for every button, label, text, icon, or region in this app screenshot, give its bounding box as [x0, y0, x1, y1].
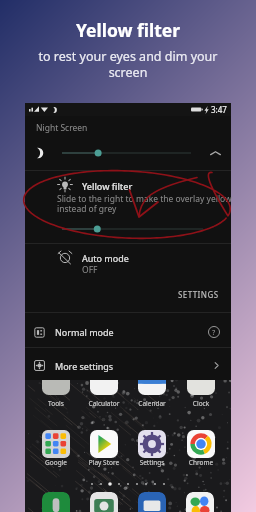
staticText: ? — [212, 327, 216, 337]
staticText: Slide to the right to make the overlay y… — [57, 193, 239, 214]
staticText: Play Store — [81, 458, 127, 467]
button[interactable]: Help — [203, 321, 225, 343]
button[interactable] — [178, 430, 224, 472]
staticText: Clock — [178, 399, 224, 408]
button[interactable]: App — [90, 492, 118, 512]
button[interactable]: SETTINGS — [173, 286, 224, 303]
button[interactable] — [129, 380, 175, 409]
staticText: Settings — [129, 458, 175, 467]
staticText: 3:47 — [211, 104, 227, 115]
staticText: SETTINGS — [178, 289, 219, 300]
button[interactable] — [33, 430, 79, 472]
button[interactable]: More settings — [25, 352, 231, 379]
button[interactable]: App — [186, 492, 214, 512]
button[interactable]: App — [42, 492, 70, 512]
button[interactable] — [62, 222, 203, 236]
button[interactable]: App — [138, 492, 166, 512]
button[interactable] — [81, 380, 127, 409]
button[interactable]: Collapse — [206, 144, 224, 162]
staticText: Yellow filter — [0, 18, 256, 42]
staticText: Calendar — [129, 399, 175, 408]
staticText: Night Screen — [36, 122, 88, 134]
button[interactable] — [33, 380, 79, 409]
staticText: Google — [33, 458, 79, 467]
button[interactable] — [178, 380, 224, 409]
button[interactable] — [129, 430, 175, 472]
staticText: Chrome — [178, 458, 224, 467]
button[interactable] — [62, 146, 191, 160]
staticText: Tools — [33, 399, 79, 408]
staticText: Yellow filter — [82, 180, 133, 192]
button[interactable] — [81, 430, 127, 472]
staticText: to rest your eyes and dim your screen — [34, 48, 222, 80]
button[interactable]: Normal mode — [25, 315, 231, 349]
staticText: OFF — [82, 264, 98, 276]
staticText: More settings — [55, 360, 114, 372]
staticText: Normal mode — [55, 326, 114, 338]
staticText: Calculator — [81, 399, 127, 408]
staticText: Auto mode — [82, 252, 129, 264]
